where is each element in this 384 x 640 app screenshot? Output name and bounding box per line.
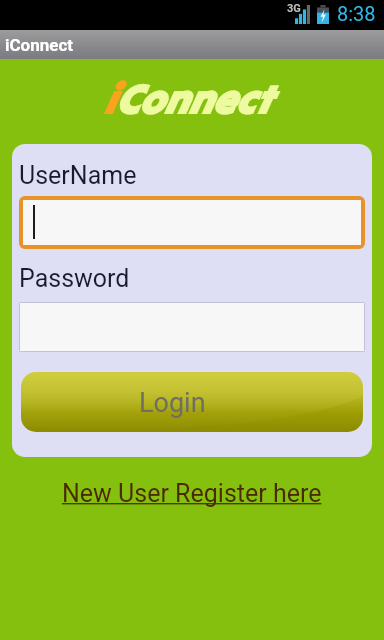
staticText: UserName: [19, 161, 137, 190]
staticText: 3G: [287, 2, 301, 15]
staticText: iConnect: [5, 35, 74, 55]
button[interactable]: Login: [21, 372, 363, 432]
button[interactable]: [23, 200, 361, 245]
staticText: Password: [19, 264, 130, 293]
button[interactable]: New User Register here: [56, 477, 328, 510]
staticText: 8:38: [337, 2, 376, 25]
staticText: Login: [139, 387, 206, 419]
staticText: Connect: [114, 73, 270, 125]
staticText: i: [102, 73, 114, 125]
staticText: New User Register here: [62, 479, 322, 508]
